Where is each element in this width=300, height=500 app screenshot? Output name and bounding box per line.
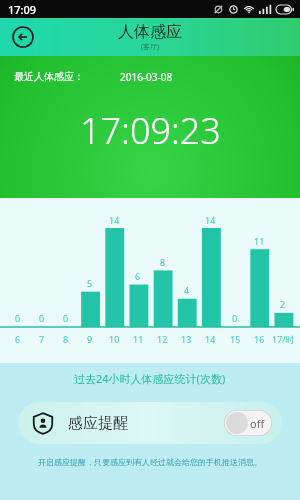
staticText: 12 bbox=[157, 333, 168, 345]
staticText: 16 bbox=[254, 333, 265, 345]
button[interactable]: Toggle sensing reminder off bbox=[224, 410, 272, 436]
staticText: 13 bbox=[181, 333, 192, 345]
staticText: 人体感应 bbox=[118, 22, 182, 42]
staticText: 11 bbox=[133, 333, 144, 345]
staticText: (客厅) bbox=[141, 42, 160, 52]
staticText: 15 bbox=[230, 333, 241, 345]
staticText: 5 bbox=[87, 277, 93, 289]
staticText: 10 bbox=[109, 333, 120, 345]
staticText: 0 bbox=[39, 312, 45, 324]
staticText: 0 bbox=[63, 312, 69, 324]
staticText: 开启感应提醒，只要感应到有人经过就会给您的手机推送消息。 bbox=[38, 457, 262, 467]
staticText: 0 bbox=[232, 312, 238, 324]
staticText: 6 bbox=[15, 333, 21, 345]
staticText: off bbox=[250, 416, 265, 431]
button[interactable]: 感应提醒 bbox=[18, 402, 282, 444]
staticText: 8 bbox=[160, 256, 166, 268]
staticText: 14 bbox=[109, 214, 120, 226]
staticText: 2 bbox=[280, 298, 286, 310]
staticText: 14 bbox=[205, 333, 216, 345]
staticText: 0 bbox=[15, 312, 21, 324]
staticText: 14 bbox=[205, 214, 216, 226]
staticText: 8 bbox=[63, 333, 69, 345]
staticText: 感应提醒 bbox=[68, 414, 128, 433]
staticText: 最近人体感应： bbox=[14, 70, 84, 83]
staticText: 2016-03-08 bbox=[120, 70, 173, 84]
staticText: 4 bbox=[184, 284, 190, 296]
staticText: 7 bbox=[39, 333, 45, 345]
staticText: 6 bbox=[135, 270, 141, 282]
staticText: 9 bbox=[87, 333, 93, 345]
staticText: 17:09 bbox=[8, 2, 37, 17]
button[interactable]: Back bbox=[10, 24, 36, 50]
staticText: 11 bbox=[254, 235, 265, 247]
staticText: 17:09:23 bbox=[80, 106, 221, 155]
staticText: 过去24小时人体感应统计(次数) bbox=[74, 371, 226, 386]
staticText: 17/时 bbox=[272, 333, 295, 345]
